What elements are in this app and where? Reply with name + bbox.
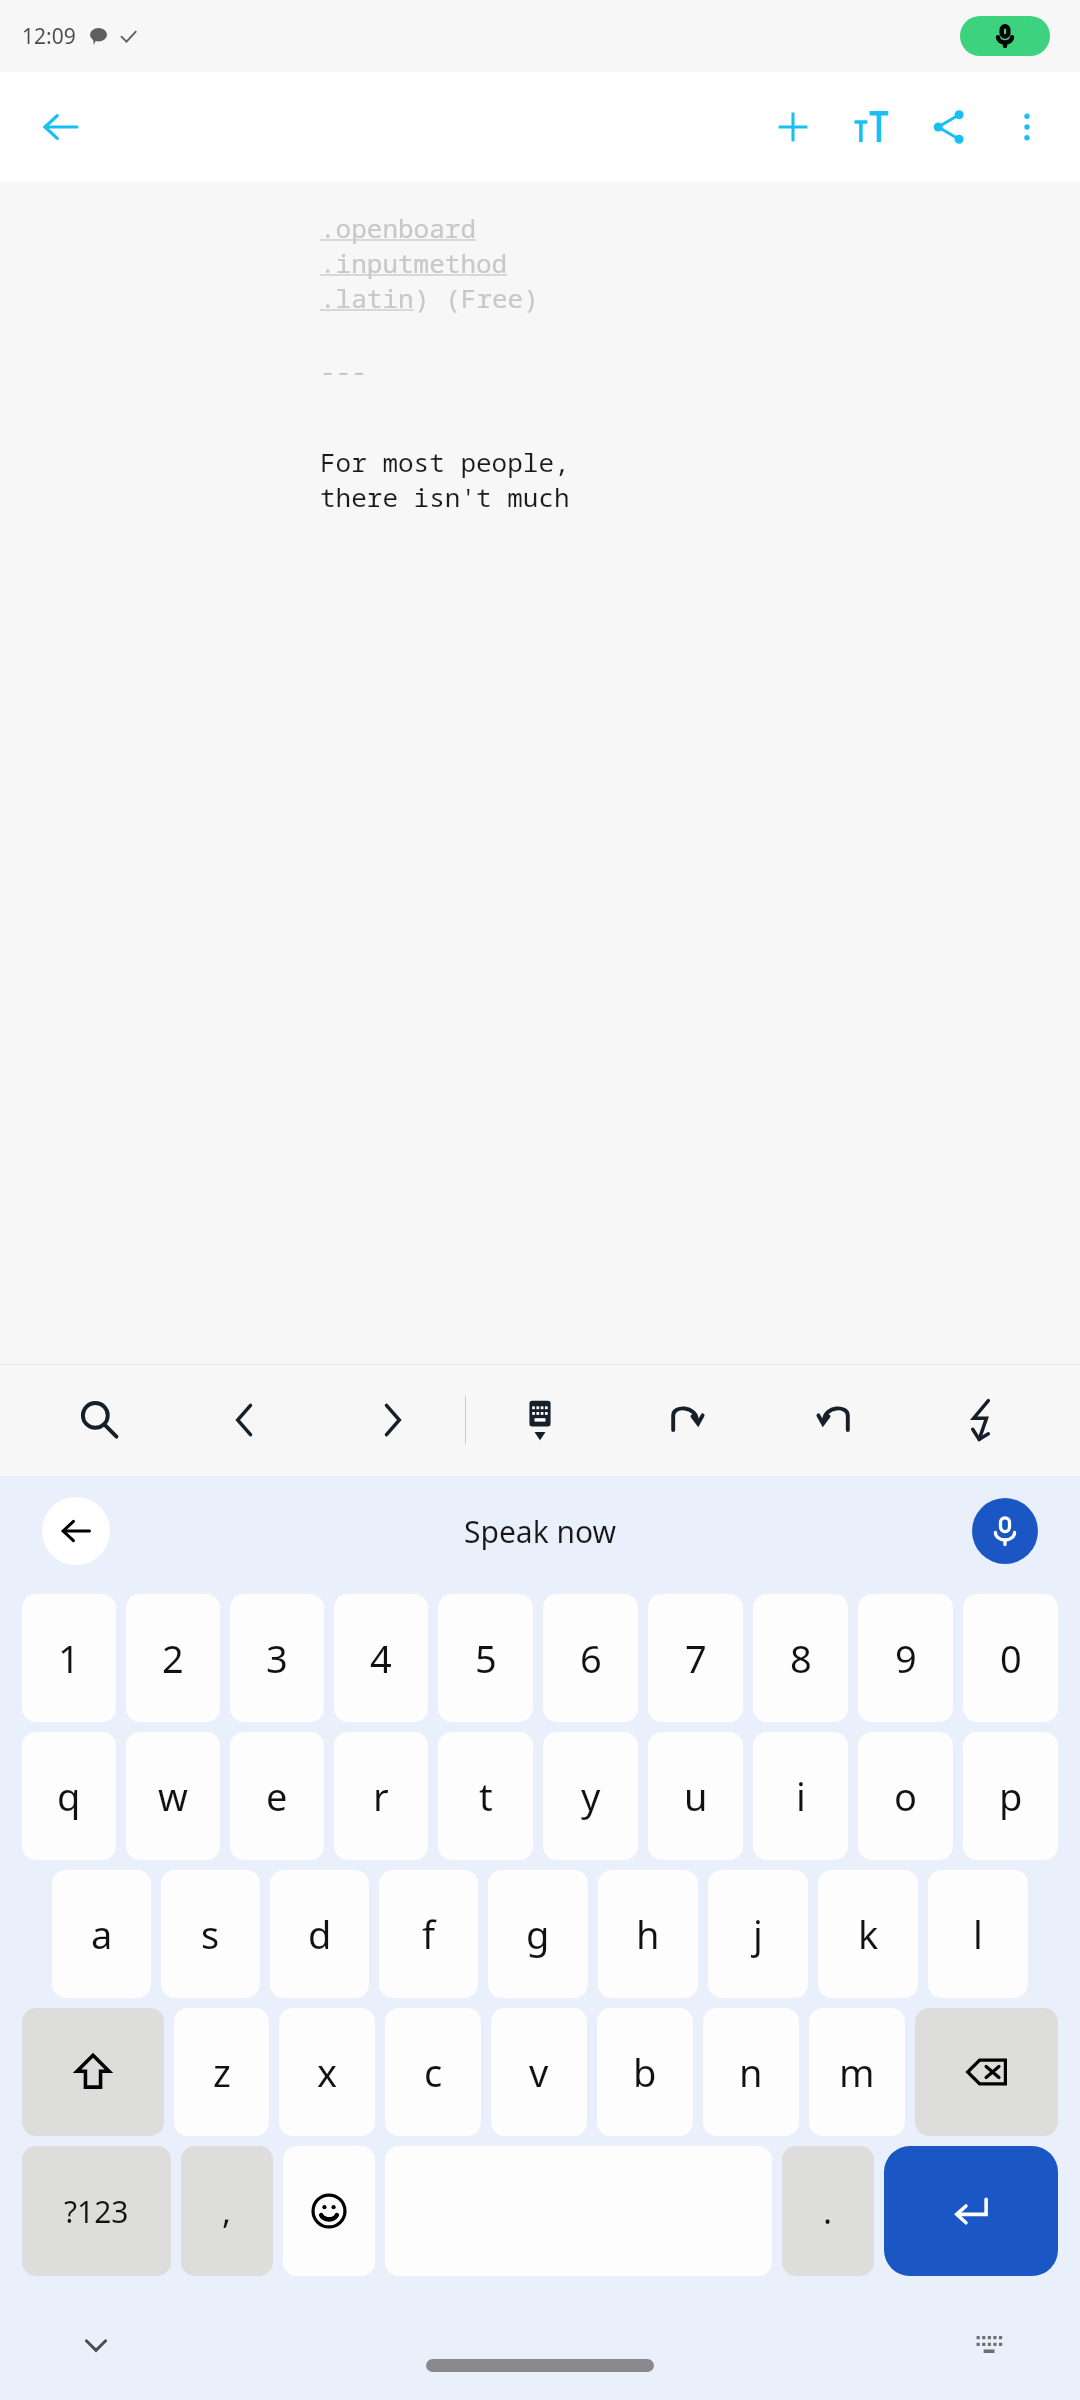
button[interactable]: t bbox=[438, 1732, 533, 1860]
button[interactable]: i bbox=[753, 1732, 848, 1860]
staticText: l bbox=[973, 1908, 983, 1960]
staticText: 5 bbox=[475, 1632, 497, 1684]
button[interactable]: ?123 bbox=[22, 2146, 171, 2276]
button[interactable]: Shortcuts bbox=[907, 1364, 1054, 1476]
button[interactable]: Previous bbox=[172, 1364, 318, 1476]
button[interactable]: b bbox=[597, 2008, 693, 2136]
button[interactable]: More options bbox=[988, 88, 1066, 166]
staticText: p bbox=[999, 1770, 1023, 1822]
button[interactable]: 0 bbox=[963, 1594, 1058, 1722]
button[interactable]: c bbox=[385, 2008, 481, 2136]
button[interactable]: o bbox=[858, 1732, 953, 1860]
staticText: d bbox=[308, 1908, 332, 1960]
staticText: .latin bbox=[320, 280, 414, 315]
button[interactable]: Voice input active bbox=[960, 16, 1050, 56]
button[interactable]: g bbox=[488, 1870, 588, 1998]
button[interactable]: 8 bbox=[753, 1594, 848, 1722]
staticText: --- bbox=[320, 353, 367, 388]
staticText: q bbox=[57, 1770, 81, 1822]
button[interactable]: j bbox=[708, 1870, 808, 1998]
staticText: , bbox=[222, 2188, 232, 2234]
staticText: k bbox=[858, 1908, 879, 1960]
button[interactable]: k bbox=[818, 1870, 918, 1998]
staticText: 0 bbox=[1000, 1632, 1022, 1684]
staticText: f bbox=[422, 1908, 436, 1960]
button[interactable]: 6 bbox=[543, 1594, 638, 1722]
button[interactable]: z bbox=[174, 2008, 269, 2136]
button[interactable]: Hide keyboard bbox=[66, 2315, 126, 2375]
staticText: 12:09 bbox=[22, 22, 76, 51]
staticText: t bbox=[479, 1770, 493, 1822]
staticText: For most people, bbox=[320, 444, 570, 479]
button[interactable]: y bbox=[543, 1732, 638, 1860]
button[interactable]: Back bbox=[22, 88, 100, 166]
staticText: u bbox=[684, 1770, 708, 1822]
staticText: 7 bbox=[685, 1632, 707, 1684]
button[interactable]: Search bbox=[26, 1364, 172, 1476]
button[interactable]: Shift bbox=[22, 2008, 164, 2136]
staticText: c bbox=[424, 2046, 443, 2098]
staticText: e bbox=[266, 1770, 288, 1822]
staticText: n bbox=[739, 2046, 763, 2098]
button[interactable]: h bbox=[598, 1870, 698, 1998]
button[interactable]: 4 bbox=[334, 1594, 428, 1722]
staticText: m bbox=[839, 2046, 875, 2098]
staticText: 4 bbox=[370, 1632, 392, 1684]
button[interactable]: , bbox=[181, 2146, 273, 2276]
staticText: 2 bbox=[162, 1632, 184, 1684]
staticText: 6 bbox=[580, 1632, 602, 1684]
button[interactable]: a bbox=[52, 1870, 151, 1998]
button[interactable]: Hide keyboard bbox=[466, 1364, 613, 1476]
staticText: ) (Free) bbox=[414, 280, 539, 315]
button[interactable]: l bbox=[928, 1870, 1028, 1998]
button[interactable]: p bbox=[963, 1732, 1058, 1860]
button[interactable]: Share bbox=[910, 88, 988, 166]
staticText: j bbox=[753, 1908, 763, 1960]
button[interactable]: v bbox=[491, 2008, 587, 2136]
button[interactable]: Next bbox=[318, 1364, 465, 1476]
staticText: 1 bbox=[58, 1632, 80, 1684]
staticText: x bbox=[317, 2046, 338, 2098]
button[interactable]: x bbox=[279, 2008, 375, 2136]
staticText: a bbox=[91, 1908, 113, 1960]
button[interactable]: 7 bbox=[648, 1594, 743, 1722]
button[interactable]: 2 bbox=[126, 1594, 220, 1722]
button[interactable]: 3 bbox=[230, 1594, 324, 1722]
staticText: g bbox=[526, 1908, 550, 1960]
staticText: 8 bbox=[790, 1632, 812, 1684]
staticText: .openboard bbox=[320, 210, 477, 245]
button[interactable]: d bbox=[270, 1870, 369, 1998]
button[interactable]: e bbox=[230, 1732, 324, 1860]
button[interactable]: Emoji bbox=[283, 2146, 375, 2276]
button[interactable]: 5 bbox=[438, 1594, 533, 1722]
button[interactable]: 1 bbox=[22, 1594, 116, 1722]
staticText: b bbox=[633, 2046, 657, 2098]
button[interactable]: q bbox=[22, 1732, 116, 1860]
button[interactable]: . bbox=[782, 2146, 874, 2276]
button[interactable]: Back bbox=[42, 1497, 110, 1565]
button[interactable]: s bbox=[161, 1870, 260, 1998]
button[interactable]: w bbox=[126, 1732, 220, 1860]
button[interactable]: Switch keyboard bbox=[960, 2315, 1020, 2375]
staticText: Speak now bbox=[464, 1511, 617, 1552]
button[interactable]: Backspace bbox=[915, 2008, 1058, 2136]
button[interactable]: Enter bbox=[884, 2146, 1058, 2276]
staticText: .inputmethod bbox=[320, 245, 508, 280]
button[interactable]: n bbox=[703, 2008, 799, 2136]
button[interactable]: 9 bbox=[858, 1594, 953, 1722]
button[interactable]: Redo bbox=[760, 1364, 907, 1476]
button[interactable]: u bbox=[648, 1732, 743, 1860]
staticText: s bbox=[201, 1908, 220, 1960]
staticText: there isn't much bbox=[320, 479, 570, 514]
staticText: v bbox=[529, 2046, 549, 2098]
button[interactable]: f bbox=[379, 1870, 478, 1998]
button[interactable]: m bbox=[809, 2008, 905, 2136]
button[interactable]: Add bbox=[754, 88, 832, 166]
button[interactable]: r bbox=[334, 1732, 428, 1860]
staticText: y bbox=[581, 1770, 601, 1822]
staticText: o bbox=[894, 1770, 917, 1822]
button[interactable]: Undo bbox=[613, 1364, 760, 1476]
button[interactable]: Text size bbox=[832, 88, 910, 166]
button[interactable]: Microphone bbox=[972, 1498, 1038, 1564]
